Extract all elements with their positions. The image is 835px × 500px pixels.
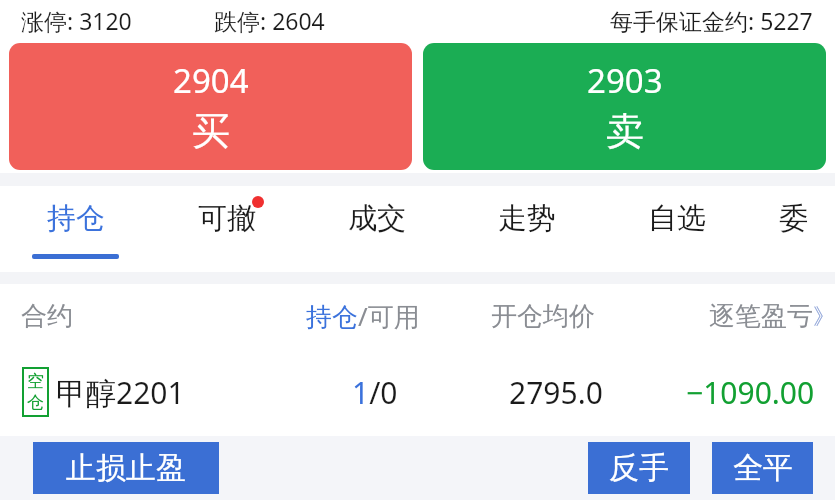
staticText: 甲醇2201 (56, 372, 185, 413)
button[interactable]: 全平 (712, 442, 813, 494)
staticText: 反手 (609, 449, 669, 487)
staticText: 仓 (27, 392, 44, 413)
staticText: 2904 (173, 58, 249, 103)
staticText: 涨停: 3120 (21, 5, 132, 36)
staticText: 自选 (648, 200, 706, 237)
button[interactable]: 自选 (602, 186, 752, 272)
button[interactable]: 成交 (302, 186, 452, 272)
staticText: 可撤 (198, 200, 256, 237)
staticText: 委 (779, 200, 808, 237)
staticText: 》 (813, 303, 835, 331)
staticText: 开仓均价 (491, 300, 595, 333)
staticText: 持仓 (47, 200, 105, 237)
button[interactable]: 2903 (423, 43, 826, 170)
staticText: 卖 (606, 107, 644, 155)
button[interactable]: 走势 (452, 186, 602, 272)
staticText: 每手保证金约: 5227 (610, 5, 813, 36)
button[interactable]: 可撤 (151, 186, 302, 272)
staticText: 空 (27, 371, 44, 392)
staticText: −1090.00 (686, 372, 815, 413)
button[interactable]: 空 (0, 348, 835, 436)
staticText: 1/0 (352, 372, 398, 413)
staticText: 跌停: 2604 (214, 5, 325, 36)
staticText: 走势 (498, 200, 556, 237)
button[interactable]: 委 (752, 186, 835, 272)
staticText: 2903 (587, 58, 663, 103)
button[interactable]: 持仓 (0, 186, 151, 272)
staticText: 全平 (733, 449, 793, 487)
button[interactable]: 止损止盈 (33, 442, 219, 494)
button[interactable]: 反手 (588, 442, 690, 494)
button[interactable]: 2904 (9, 43, 412, 170)
staticText: 成交 (348, 200, 406, 237)
staticText: 2795.0 (509, 372, 603, 413)
staticText: 买 (192, 107, 230, 155)
staticText: 止损止盈 (66, 449, 186, 487)
staticText: 逐笔盈亏 (709, 300, 813, 333)
staticText: 持仓/可用 (306, 298, 420, 334)
staticText: 合约 (21, 300, 73, 333)
